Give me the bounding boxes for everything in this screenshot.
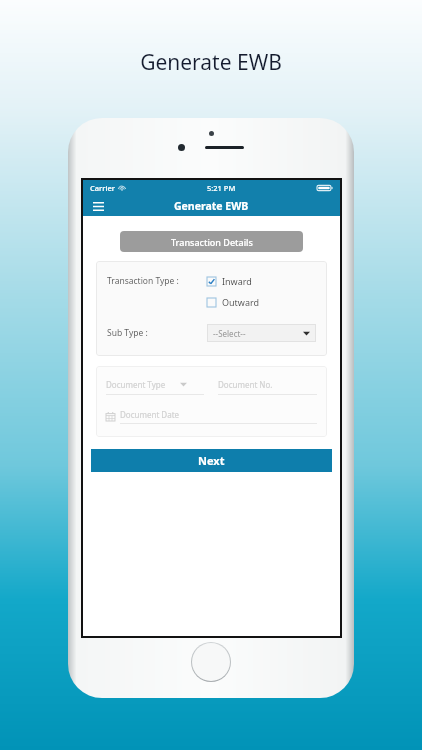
button[interactable]: Document No. (218, 379, 317, 395)
staticText: Transaction Details (171, 236, 253, 248)
staticText: Document Type (106, 379, 166, 390)
staticText: --Select-- (213, 328, 246, 339)
staticText: Inward (222, 275, 252, 287)
staticText: 5:21 PM (207, 183, 236, 193)
button[interactable]: Next (91, 449, 332, 472)
staticText: Next (198, 453, 225, 468)
staticText: Generate EWB (174, 199, 249, 213)
button[interactable]: Home (192, 643, 230, 681)
staticText: Sub Type : (107, 327, 207, 339)
staticText: Outward (222, 296, 260, 308)
button[interactable]: Outward (207, 296, 260, 308)
staticText: Transaction Type : (107, 275, 207, 287)
staticText: Document No. (218, 379, 273, 390)
button[interactable]: Document Type (106, 379, 204, 395)
button[interactable]: Inward (207, 275, 252, 287)
button[interactable]: Menu (89, 197, 107, 215)
staticText: Carrier (90, 183, 115, 193)
button[interactable]: Transaction Details (120, 231, 303, 252)
button[interactable]: Document Date (106, 409, 317, 424)
staticText: Generate EWB (0, 48, 422, 77)
button[interactable]: --Select-- (207, 324, 316, 342)
staticText: Document Date (120, 409, 180, 420)
